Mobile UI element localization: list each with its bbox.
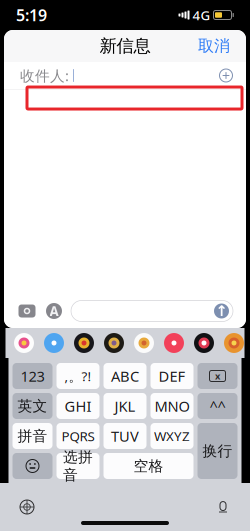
button[interactable]: 删除 <box>197 363 237 389</box>
staticText: A <box>49 302 58 320</box>
staticText: 英文 <box>17 397 47 415</box>
staticText: ↑ <box>215 303 227 319</box>
button[interactable]: 音乐动图 <box>73 332 94 353</box>
button[interactable]: 数码触控 <box>193 332 214 353</box>
button[interactable]: App Store <box>45 302 63 320</box>
staticText: 123 <box>20 366 44 386</box>
button[interactable]: 贴纸 <box>133 332 154 353</box>
button[interactable]: 123 <box>12 363 52 389</box>
button[interactable]: PQRS <box>56 423 99 449</box>
button[interactable]: 拼音 <box>12 423 52 449</box>
button[interactable]: 空格 <box>103 453 193 479</box>
button[interactable]: ,。?! <box>56 363 99 389</box>
button[interactable]: 拟我表情 <box>103 332 124 353</box>
staticText: ,。?! <box>64 367 91 385</box>
button[interactable]: 英文 <box>12 393 52 419</box>
button[interactable]: 换行 <box>197 423 237 479</box>
button[interactable]: DEF <box>150 363 193 389</box>
staticText: DEF <box>158 366 185 386</box>
staticText: 选拼音 <box>63 448 93 484</box>
staticText: ^^ <box>209 396 225 416</box>
button[interactable]: JKL <box>103 393 146 419</box>
button[interactable]: 取消 <box>188 30 240 62</box>
staticText: 空格 <box>133 457 163 475</box>
button[interactable]: ^^ <box>197 393 237 419</box>
button[interactable]: 照片 <box>13 332 34 353</box>
button[interactable]: ABC <box>103 363 146 389</box>
button[interactable]: MNO <box>150 393 193 419</box>
button[interactable]: 语音输入 <box>208 494 238 520</box>
button[interactable]: 发送 <box>213 302 230 319</box>
button[interactable]: 音乐 <box>163 332 184 353</box>
staticText: 拼音 <box>17 427 47 445</box>
staticText: 5:19 <box>16 4 47 26</box>
button[interactable]: 添加联系人 <box>218 67 234 83</box>
staticText: 换行 <box>202 442 232 460</box>
button[interactable]: TUV <box>103 423 146 449</box>
staticText: 收件人: <box>20 66 69 85</box>
staticText: MNO <box>154 396 189 416</box>
staticText: 新信息 <box>99 35 150 57</box>
staticText: PQRS <box>61 427 94 445</box>
button[interactable]: WXYZ <box>150 423 193 449</box>
staticText: x <box>215 370 220 382</box>
button[interactable]: 切换键盘 <box>12 494 42 520</box>
staticText: GHI <box>64 396 91 416</box>
staticText: JKL <box>114 396 135 416</box>
button[interactable]: 选拼音 <box>56 453 99 479</box>
staticText: 4G <box>192 6 210 24</box>
button[interactable]: GHI <box>56 393 99 419</box>
staticText: TUV <box>111 426 139 446</box>
staticText: 取消 <box>198 36 230 56</box>
staticText: WXYZ <box>154 427 190 445</box>
button[interactable]: App Store <box>43 332 64 353</box>
button[interactable]: 相机 <box>17 302 37 320</box>
staticText: ABC <box>111 366 139 386</box>
button[interactable]: 表情符号 <box>12 453 52 479</box>
button[interactable]: 更多 <box>223 332 244 353</box>
